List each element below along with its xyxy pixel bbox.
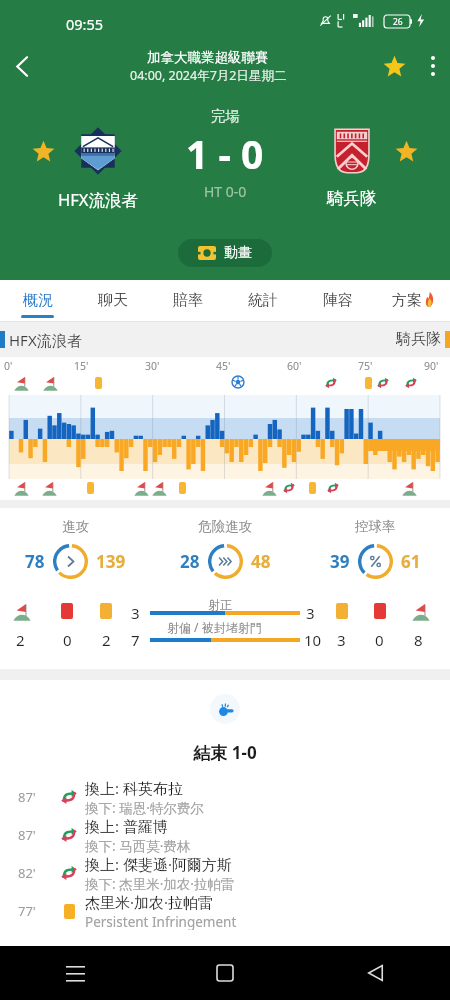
staticText: 28 — [180, 550, 200, 573]
staticText: 82' — [18, 864, 54, 882]
staticText: HFX流浪者 — [9, 330, 82, 350]
staticText: 90' — [424, 359, 439, 373]
staticText: 換下: 杰里米·加农·拉帕雷 — [85, 875, 235, 892]
staticText: 完場 — [211, 107, 240, 125]
staticText: 杰里米·加农·拉帕雷 — [85, 892, 214, 912]
staticText: 1 - 0 — [186, 127, 264, 180]
staticText: HFX流浪者 — [58, 188, 138, 211]
staticText: 動畫 — [224, 244, 252, 262]
staticText: 26 — [393, 16, 403, 28]
button[interactable]: Recent apps — [0, 946, 150, 1000]
staticText: 騎兵隊 — [396, 330, 441, 349]
staticText: 騎兵隊 — [327, 188, 377, 209]
button[interactable]: 方案 — [375, 280, 450, 321]
staticText: 換下: 瑞恩·特尔费尔 — [85, 799, 204, 816]
staticText: 87' — [18, 788, 54, 806]
button[interactable]: 87' — [0, 778, 450, 816]
button[interactable]: 動畫 — [178, 239, 272, 267]
staticText: 方案 — [392, 291, 422, 310]
staticText: 2 — [16, 630, 25, 650]
staticText: 進攻 — [62, 518, 89, 535]
staticText: 換上: 傑斐遜·阿爾方斯 — [85, 854, 232, 874]
button[interactable]: Home — [150, 946, 300, 1000]
button[interactable]: 危險進攻 — [150, 518, 300, 579]
button[interactable]: 3 — [0, 597, 450, 655]
staticText: Persistent Infringement — [85, 913, 237, 930]
button[interactable]: More options — [416, 49, 450, 83]
staticText: 換上: 普羅博 — [85, 816, 168, 836]
staticText: 61 — [401, 550, 421, 573]
staticText: 換下: 马西莫·费林 — [85, 837, 191, 854]
button[interactable]: 賠率 — [150, 280, 225, 321]
staticText: 陣容 — [323, 291, 353, 310]
staticText: 3 — [306, 603, 315, 623]
staticText: 加拿大職業超級聯賽 — [147, 49, 269, 66]
staticText: 0 — [63, 630, 72, 650]
staticText: 45' — [216, 359, 231, 373]
button[interactable]: Back — [300, 946, 450, 1000]
button[interactable]: Favorite — [372, 44, 416, 88]
staticText: 0' — [4, 359, 13, 373]
staticText: 09:55 — [66, 14, 104, 34]
staticText: 48 — [251, 550, 271, 573]
button[interactable]: 82' — [0, 854, 450, 892]
staticText: 8 — [414, 630, 423, 650]
staticText: 3 — [131, 603, 140, 623]
button[interactable]: 陣容 — [300, 280, 375, 321]
staticText: 77' — [18, 902, 54, 920]
staticText: 10 — [304, 630, 322, 650]
staticText: 概況 — [23, 291, 53, 310]
staticText: 75' — [358, 359, 373, 373]
button[interactable]: 87' — [0, 816, 450, 854]
button[interactable]: 控球率 — [300, 518, 450, 579]
button[interactable]: 概況 — [0, 280, 75, 321]
staticText: 0 — [375, 630, 384, 650]
staticText: 聊天 — [98, 291, 128, 310]
button[interactable]: Back — [0, 44, 44, 88]
staticText: 60' — [287, 359, 302, 373]
staticText: 統計 — [248, 291, 278, 310]
staticText: 換上: 科英布拉 — [85, 778, 183, 798]
staticText: 7 — [131, 630, 140, 650]
staticText: 139 — [96, 550, 126, 573]
staticText: 射偏 / 被封堵射門 — [167, 619, 262, 635]
button[interactable]: 統計 — [225, 280, 300, 321]
staticText: 3 — [337, 630, 346, 650]
staticText: 2 — [102, 630, 111, 650]
staticText: 30' — [145, 359, 160, 373]
staticText: 危險進攻 — [198, 518, 252, 535]
staticText: 78 — [25, 550, 45, 573]
staticText: 控球率 — [355, 518, 396, 535]
staticText: 39 — [330, 550, 350, 573]
staticText: 射正 — [208, 597, 232, 612]
staticText: 15' — [74, 359, 89, 373]
button[interactable]: 聊天 — [75, 280, 150, 321]
button[interactable]: 進攻 — [0, 518, 150, 579]
button[interactable]: 77' — [0, 892, 450, 930]
staticText: 04:00, 2024年7月2日星期二 — [130, 67, 287, 84]
staticText: HT 0-0 — [204, 182, 247, 201]
staticText: 結束 1-0 — [0, 741, 450, 764]
staticText: 87' — [18, 826, 54, 844]
staticText: 賠率 — [173, 291, 203, 310]
